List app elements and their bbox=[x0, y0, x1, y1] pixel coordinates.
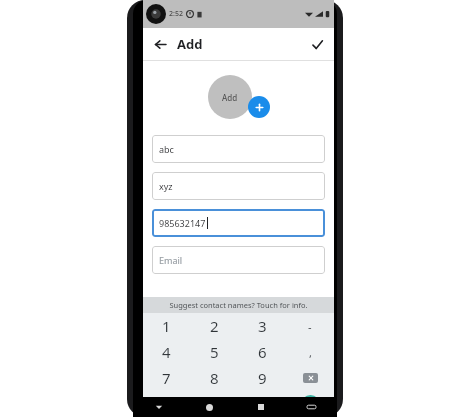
staticText: 9 bbox=[258, 368, 267, 388]
button[interactable]: Back bbox=[148, 32, 172, 56]
button[interactable]: Add bbox=[208, 75, 252, 119]
staticText: Add bbox=[177, 35, 203, 53]
button[interactable]: Hide keyboard bbox=[133, 397, 184, 417]
button[interactable]: Save bbox=[305, 32, 329, 56]
button[interactable] bbox=[238, 391, 286, 417]
staticText: 5 bbox=[210, 342, 219, 362]
staticText: 2 bbox=[210, 316, 219, 336]
button[interactable]: Email bbox=[152, 246, 325, 274]
button[interactable]: Home bbox=[184, 397, 235, 417]
staticText: xyz bbox=[159, 180, 173, 192]
staticText: Suggest contact names? Touch for info. bbox=[169, 300, 308, 310]
button[interactable]: , bbox=[286, 339, 334, 365]
staticText: 2:52 bbox=[169, 9, 183, 19]
staticText: 985632147 bbox=[159, 217, 206, 229]
button[interactable]: . bbox=[143, 391, 190, 417]
staticText: - bbox=[308, 319, 312, 334]
staticText: Add bbox=[222, 92, 238, 103]
button[interactable]: xyz bbox=[152, 172, 325, 200]
staticText: 6 bbox=[258, 342, 267, 362]
button[interactable]: 3 bbox=[238, 313, 286, 339]
button[interactable]: 985632147 bbox=[152, 209, 325, 237]
staticText: Email bbox=[159, 254, 183, 266]
button[interactable]: Recents bbox=[235, 397, 286, 417]
staticText: 0 bbox=[210, 394, 219, 414]
button[interactable]: 9 bbox=[238, 365, 286, 391]
button[interactable]: 1 bbox=[143, 313, 190, 339]
staticText: 3 bbox=[258, 316, 267, 336]
button[interactable]: abc bbox=[152, 135, 325, 163]
staticText: 7 bbox=[162, 368, 171, 388]
button[interactable]: 8 bbox=[190, 365, 238, 391]
button[interactable]: 2 bbox=[190, 313, 238, 339]
button[interactable]: 5 bbox=[190, 339, 238, 365]
staticText: 4 bbox=[162, 342, 171, 362]
staticText: , bbox=[309, 345, 312, 360]
button[interactable]: 6 bbox=[238, 339, 286, 365]
staticText: 8 bbox=[210, 368, 219, 388]
button[interactable]: Switch keyboard bbox=[286, 397, 337, 417]
button[interactable]: Suggest contact names? Touch for info. bbox=[143, 297, 334, 313]
button[interactable]: Done bbox=[286, 391, 334, 417]
staticText: 1 bbox=[162, 316, 171, 336]
button[interactable]: 7 bbox=[143, 365, 190, 391]
button[interactable]: Backspace bbox=[286, 365, 334, 391]
staticText: abc bbox=[159, 143, 174, 155]
button[interactable]: 0 bbox=[190, 391, 238, 417]
button[interactable]: Add photo bbox=[248, 96, 270, 118]
button[interactable]: - bbox=[286, 313, 334, 339]
button[interactable]: 4 bbox=[143, 339, 190, 365]
